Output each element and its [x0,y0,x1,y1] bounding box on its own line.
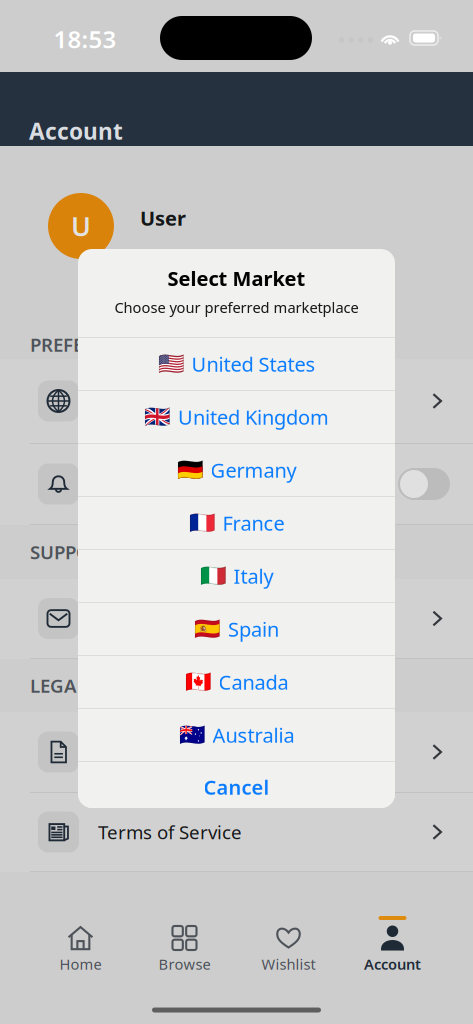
button[interactable]: Cancel [78,762,395,812]
button[interactable]: Browse [132,910,236,1024]
staticText: Wishlist [261,954,315,974]
staticText: Italy [233,563,273,589]
staticText: 🇬🇧 [144,405,171,429]
button[interactable]: Terms of Service [0,793,473,871]
staticText: Market [98,389,161,413]
staticText: Spain [228,616,279,642]
staticText: Germany [210,457,296,483]
staticText: Terms of Service [98,820,242,844]
staticText: PREFERENCES [30,332,152,357]
staticText: Cancel [203,774,269,800]
staticText: 🇦🇺 [178,723,205,747]
button[interactable]: Contact Us [0,579,473,658]
staticText: SUPPORT [30,540,114,564]
button[interactable]: 🇫🇷 [78,497,395,549]
staticText: Australia [212,722,294,748]
staticText: Home [59,954,101,974]
staticText: User [140,205,186,231]
staticText: 18:53 [53,23,116,55]
staticText: Account [29,116,123,146]
button[interactable]: Privacy Policy [0,712,473,792]
staticText: Browse [158,954,210,974]
button[interactable]: 🇪🇸 [78,603,395,655]
button[interactable]: 🇮🇹 [78,550,395,602]
button[interactable]: Account [340,910,444,1024]
staticText: 🇪🇸 [194,617,221,641]
staticText: 🇨🇦 [184,670,211,694]
button[interactable]: 🇺🇸 [78,338,395,390]
staticText: United Kingdom [178,404,329,430]
staticText: Account [364,954,421,974]
button[interactable]: 🇦🇺 [78,709,395,761]
staticText: 🇺🇸 [157,352,184,376]
staticText: Choose your preferred marketplace [114,297,358,317]
button[interactable]: 🇨🇦 [78,656,395,708]
staticText: 🇮🇹 [199,564,226,588]
button[interactable]: Market [0,359,473,443]
staticText: LEGAL [30,673,87,698]
button[interactable]: 🇬🇧 [78,391,395,443]
staticText: Notifications [98,472,209,496]
staticText: Select Market [167,265,305,292]
staticText: 🇩🇪 [176,458,203,482]
staticText: 🇫🇷 [188,511,215,535]
staticText: United States [191,351,315,377]
button[interactable]: Notifications [0,444,473,524]
button[interactable]: Home [28,910,132,1024]
staticText: ACCOUNT [30,912,121,936]
staticText: Canada [218,669,288,695]
staticText: France [222,510,284,536]
staticText: Privacy Policy [98,740,216,764]
button[interactable]: 🇩🇪 [78,444,395,496]
button[interactable]: Wishlist [236,910,340,1024]
staticText: U [71,208,91,244]
